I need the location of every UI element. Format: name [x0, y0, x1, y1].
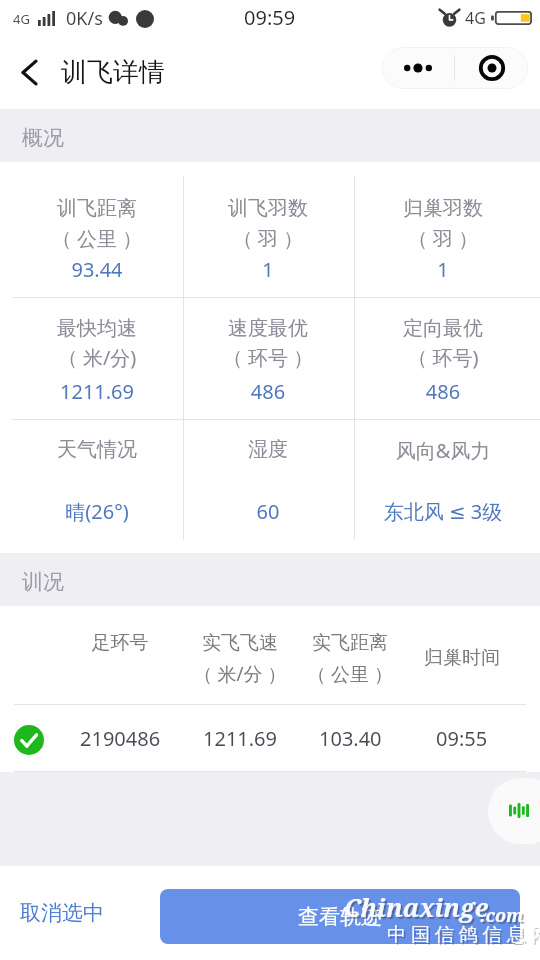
button[interactable]: More — [382, 47, 454, 89]
staticText: 晴(26°) — [7, 498, 187, 525]
staticText: 09:59 — [244, 4, 296, 31]
staticText: （ 公里 ） — [7, 225, 187, 252]
staticText: 查看轨迹 — [298, 904, 382, 930]
staticText: 风向&风力 — [353, 437, 533, 464]
staticText: 60 — [178, 498, 358, 525]
staticText: 概况 — [22, 125, 64, 151]
staticText: 中 国 信 鸽 信 息 网 — [389, 923, 540, 949]
staticText: 最快均速 — [7, 316, 187, 341]
button[interactable]: Close — [455, 47, 528, 89]
staticText: （ 环号 ） — [178, 344, 358, 371]
staticText: 归巢羽数 — [353, 196, 533, 221]
staticText: 486 — [353, 378, 533, 405]
staticText: 东北风 ≤ 3级 — [353, 498, 533, 525]
staticText: 1 — [178, 256, 358, 283]
staticText: 4G — [13, 10, 30, 28]
button[interactable]: 查看轨迹 — [160, 889, 520, 944]
staticText: （ 羽 ） — [353, 225, 533, 252]
staticText: 训飞羽数 — [178, 196, 358, 221]
staticText: 归巢时间 — [377, 646, 540, 670]
button[interactable]: 取消选中 — [10, 890, 114, 936]
button[interactable]: Back — [0, 56, 175, 89]
staticText: 定向最优 — [353, 316, 533, 341]
staticText: （ 公里 ） — [265, 661, 435, 687]
staticText: （ 米/分) — [7, 344, 187, 371]
staticText: Chinaxinge — [346, 892, 491, 926]
staticText: 0K/s — [66, 6, 103, 31]
button[interactable]: Statistics — [487, 777, 540, 845]
staticText: 93.44 — [7, 256, 187, 283]
staticText: 取消选中 — [20, 900, 104, 926]
staticText: 实飞距离 — [265, 631, 435, 655]
staticText: 训飞距离 — [7, 196, 187, 221]
staticText: 103.40 — [319, 725, 382, 752]
staticText: 天气情况 — [7, 437, 187, 462]
staticText: 中 国 信 鸽 信 息 网 — [387, 921, 540, 947]
other: Back — [16, 59, 43, 86]
staticText: 09:55 — [436, 725, 488, 752]
staticText: 实飞飞速 — [155, 631, 325, 655]
staticText: 1211.69 — [203, 725, 277, 752]
staticText: 486 — [178, 378, 358, 405]
staticText: .com — [482, 905, 526, 930]
staticText: 足环号 — [35, 631, 205, 655]
button[interactable]: 2190486 — [0, 705, 540, 771]
staticText: 训飞详情 — [61, 56, 165, 89]
staticText: 训况 — [22, 569, 64, 595]
staticText: 2190486 — [80, 725, 161, 752]
staticText: 1 — [353, 256, 533, 283]
staticText: （ 环号) — [353, 344, 533, 371]
staticText: .com — [480, 903, 524, 928]
staticText: Chinaxinge — [344, 890, 489, 924]
staticText: 速度最优 — [178, 316, 358, 341]
staticText: 1211.69 — [7, 378, 187, 405]
staticText: 4G — [465, 7, 486, 29]
staticText: （ 羽 ） — [178, 225, 358, 252]
staticText: 湿度 — [178, 437, 358, 462]
staticText: （ 米/分 ） — [155, 661, 325, 687]
